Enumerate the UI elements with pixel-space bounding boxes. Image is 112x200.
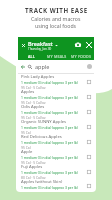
button[interactable]: Select food [84, 137, 93, 146]
staticText: ALL [28, 54, 35, 59]
button[interactable]: MY FOODS [69, 53, 94, 60]
button[interactable]: Apples (without Skin) [18, 179, 94, 191]
button[interactable]: Apples [18, 89, 94, 104]
button[interactable]: Select food [84, 107, 93, 116]
staticText: 1 medium (3 in dia) (approx 3 per lb) [21, 125, 78, 130]
button[interactable]: Red Delicious Apples [18, 134, 94, 149]
button[interactable]: Take photo [73, 37, 83, 53]
button[interactable]: Select food [84, 122, 93, 131]
button[interactable]: Apple [18, 149, 94, 164]
staticText: Calories and macros [31, 15, 81, 22]
staticText: 1 medium (3 in dia) (approx 3 per lb) [21, 155, 78, 160]
staticText: using local foods [35, 22, 77, 29]
button[interactable]: Fuji Apples [18, 164, 94, 179]
staticText: Apples (without Skin) [21, 179, 63, 185]
button[interactable]: Clear search [85, 60, 94, 73]
button[interactable]: Select food [84, 92, 93, 101]
staticText: 1 medium (3 in dia) (approx 3 per lb) [21, 110, 78, 115]
button[interactable]: Pink Lady Apples [18, 74, 94, 89]
staticText: 1 medium (3 in dia) (approx 3 per lb) [21, 185, 78, 190]
staticText: 95 Cal · 5 Cal/oz [21, 100, 46, 104]
staticText: 1 medium (3 in dia) (approx 3 per lb) [21, 170, 78, 175]
staticText: 95 Cal [21, 145, 31, 149]
staticText: 80 Cal · 5 Cal/oz [21, 175, 46, 179]
staticText: 95 Cal · 5 Cal/oz [21, 115, 46, 119]
button[interactable]: Select food [84, 77, 93, 86]
staticText: Thursday, Jan 30 [28, 47, 52, 51]
staticText: Fuji Apples [21, 164, 43, 170]
staticText: MY FOODS [71, 54, 92, 59]
button[interactable]: Back [18, 60, 27, 73]
button[interactable]: Select food [84, 152, 93, 161]
button[interactable]: Select food [84, 167, 93, 176]
staticText: Apple [21, 149, 33, 155]
staticText: Red Delicious Apples [21, 134, 62, 140]
staticText: 95 Cal · 5 Cal/oz [21, 85, 46, 89]
button[interactable]: Scan barcode [83, 37, 94, 53]
staticText: Odis Apples [21, 104, 45, 110]
staticText: Apples [21, 89, 35, 95]
button[interactable]: Close [18, 37, 28, 53]
button[interactable]: ALL [18, 53, 44, 60]
staticText: Breakfast [28, 40, 53, 47]
button[interactable]: MY MEALS [44, 53, 69, 60]
staticText: Pink Lady Apples [21, 74, 55, 80]
button[interactable]: Organic SUNNY Apples [18, 119, 94, 134]
staticText: 1 medium (3 in dia) (approx 3 per lb) [21, 80, 78, 85]
staticText: apple [35, 63, 50, 70]
staticText: MY MEALS [47, 54, 67, 59]
button[interactable]: Breakfast [28, 40, 58, 51]
staticText: 1 medium (3 in dia) (approx 3 per lb) [21, 140, 78, 145]
button[interactable]: Select food [84, 181, 93, 190]
staticText: 1 medium (3 in dia) (approx 3 per lb) [21, 95, 78, 100]
staticText: TRACK WITH EASE [25, 6, 88, 14]
staticText: Organic SUNNY Apples [21, 119, 67, 125]
staticText: 95 Cal · 5 Cal/oz [21, 160, 46, 164]
button[interactable]: Odis Apples [18, 104, 94, 119]
staticText: 95 Cal [21, 130, 31, 134]
